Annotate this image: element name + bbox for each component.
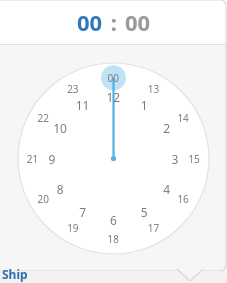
- staticText: 00: [125, 7, 151, 37]
- staticText: :: [105, 7, 123, 37]
- button[interactable]: 00: [123, 7, 153, 37]
- button[interactable]: Clock face hour picker: [0, 45, 227, 271]
- staticText: 00: [77, 7, 103, 37]
- button[interactable]: Ship: [2, 266, 28, 282]
- button[interactable]: 00: [75, 7, 105, 37]
- staticText: Ship: [2, 266, 28, 282]
